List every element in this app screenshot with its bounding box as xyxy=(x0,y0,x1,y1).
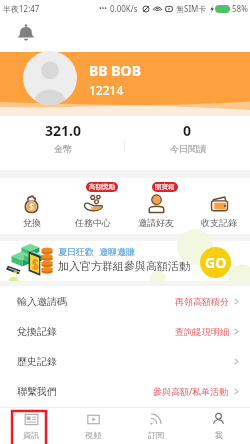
staticText: 我 xyxy=(215,430,223,440)
button[interactable]: 歷史記錄 xyxy=(0,346,250,376)
staticText: 資訊 xyxy=(23,430,39,440)
staticText: 半夜12:47 xyxy=(3,3,40,14)
button[interactable]: GO xyxy=(200,247,231,278)
button[interactable]: 聯繫我們 xyxy=(0,376,250,406)
staticText: BB BOB xyxy=(89,61,141,80)
button[interactable]: 0 xyxy=(125,116,250,170)
staticText: 邀請好友 xyxy=(138,217,174,228)
button[interactable]: 資訊 xyxy=(0,407,62,444)
staticText: 歷史記錄 xyxy=(17,355,57,368)
staticText: 兌換 xyxy=(23,217,41,228)
staticText: 聯繫我們 xyxy=(17,385,57,398)
staticText: 邀聊邀賺 xyxy=(99,246,135,257)
button[interactable] xyxy=(23,51,77,105)
staticText: 收支記錄 xyxy=(201,217,237,228)
button[interactable]: 夏日狂歡 xyxy=(0,241,250,281)
staticText: 訂閱 xyxy=(148,430,164,440)
staticText: 0.00K/s xyxy=(110,3,138,14)
button[interactable]: 訂閱 xyxy=(124,407,187,444)
staticText: 查詢提現明細 xyxy=(175,326,229,337)
staticText: 參與高額/私单活動 xyxy=(153,385,229,397)
staticText: 視頻 xyxy=(85,430,101,440)
button[interactable]: 321.0 xyxy=(0,116,125,170)
button[interactable]: 我 xyxy=(187,407,250,444)
staticText: 兌換記錄 xyxy=(17,325,57,338)
staticText: 任務中心 xyxy=(75,217,111,228)
staticText: 金幣 xyxy=(54,143,72,154)
button[interactable]: 視頻 xyxy=(62,407,124,444)
staticText: 12214 xyxy=(89,82,124,98)
staticText: 加入官方群組參與高額活動 xyxy=(58,259,190,273)
staticText: 開寶箱 xyxy=(155,183,175,191)
staticText: 0 xyxy=(183,121,192,140)
staticText: 再領高額積分 xyxy=(175,296,229,307)
staticText: 輸入邀請碼 xyxy=(17,295,67,308)
staticText: 321.0 xyxy=(45,121,81,140)
staticText: ••• xyxy=(99,4,107,14)
staticText: 今日閱讀 xyxy=(170,143,206,154)
staticText: 夏日狂歡 xyxy=(58,246,94,257)
button[interactable]: 任務中心 xyxy=(62,178,124,234)
button[interactable]: 邀請好友 xyxy=(124,178,187,234)
button[interactable]: 輸入邀請碼 xyxy=(0,286,250,316)
staticText: 高額獎勵 xyxy=(89,183,115,191)
staticText: 58% xyxy=(232,3,248,14)
staticText: 無SIM卡 xyxy=(176,3,207,14)
button[interactable]: 兌換 xyxy=(0,178,62,234)
button[interactable]: Notifications xyxy=(17,23,35,42)
staticText: GO xyxy=(205,253,227,272)
button[interactable]: 收支記錄 xyxy=(187,178,250,234)
button[interactable]: 兌換記錄 xyxy=(0,316,250,346)
